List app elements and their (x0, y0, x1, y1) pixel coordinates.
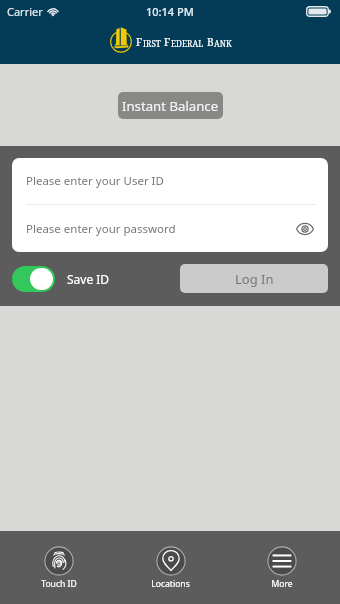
staticText: IRST (143, 38, 161, 49)
button[interactable]: Please enter your User ID (12, 158, 328, 204)
button[interactable]: Please enter your password (12, 205, 328, 252)
staticText: ANK (214, 38, 232, 49)
staticText: EDERAL (171, 38, 204, 49)
staticText: F (164, 35, 171, 49)
staticText: Save ID (67, 271, 110, 287)
button[interactable]: Instant Balance (118, 92, 223, 119)
staticText: Touch ID (41, 578, 77, 590)
staticText: B (207, 35, 214, 49)
staticText: 10:14 PM (146, 4, 194, 19)
staticText: Carrier (7, 4, 43, 19)
staticText: F (136, 35, 143, 49)
button[interactable]: Show password (290, 214, 320, 244)
staticText: Instant Balance (122, 97, 219, 115)
button[interactable]: Locations (115, 541, 226, 595)
staticText: Locations (151, 578, 190, 590)
button[interactable]: Save ID (12, 266, 110, 292)
staticText: Please enter your User ID (26, 173, 164, 189)
button[interactable]: More (226, 541, 337, 595)
button[interactable]: Touch ID (3, 541, 115, 595)
button[interactable]: Log In (180, 264, 328, 293)
staticText: More (271, 578, 293, 590)
staticText: Log In (235, 270, 274, 288)
staticText: Please enter your password (26, 221, 176, 237)
